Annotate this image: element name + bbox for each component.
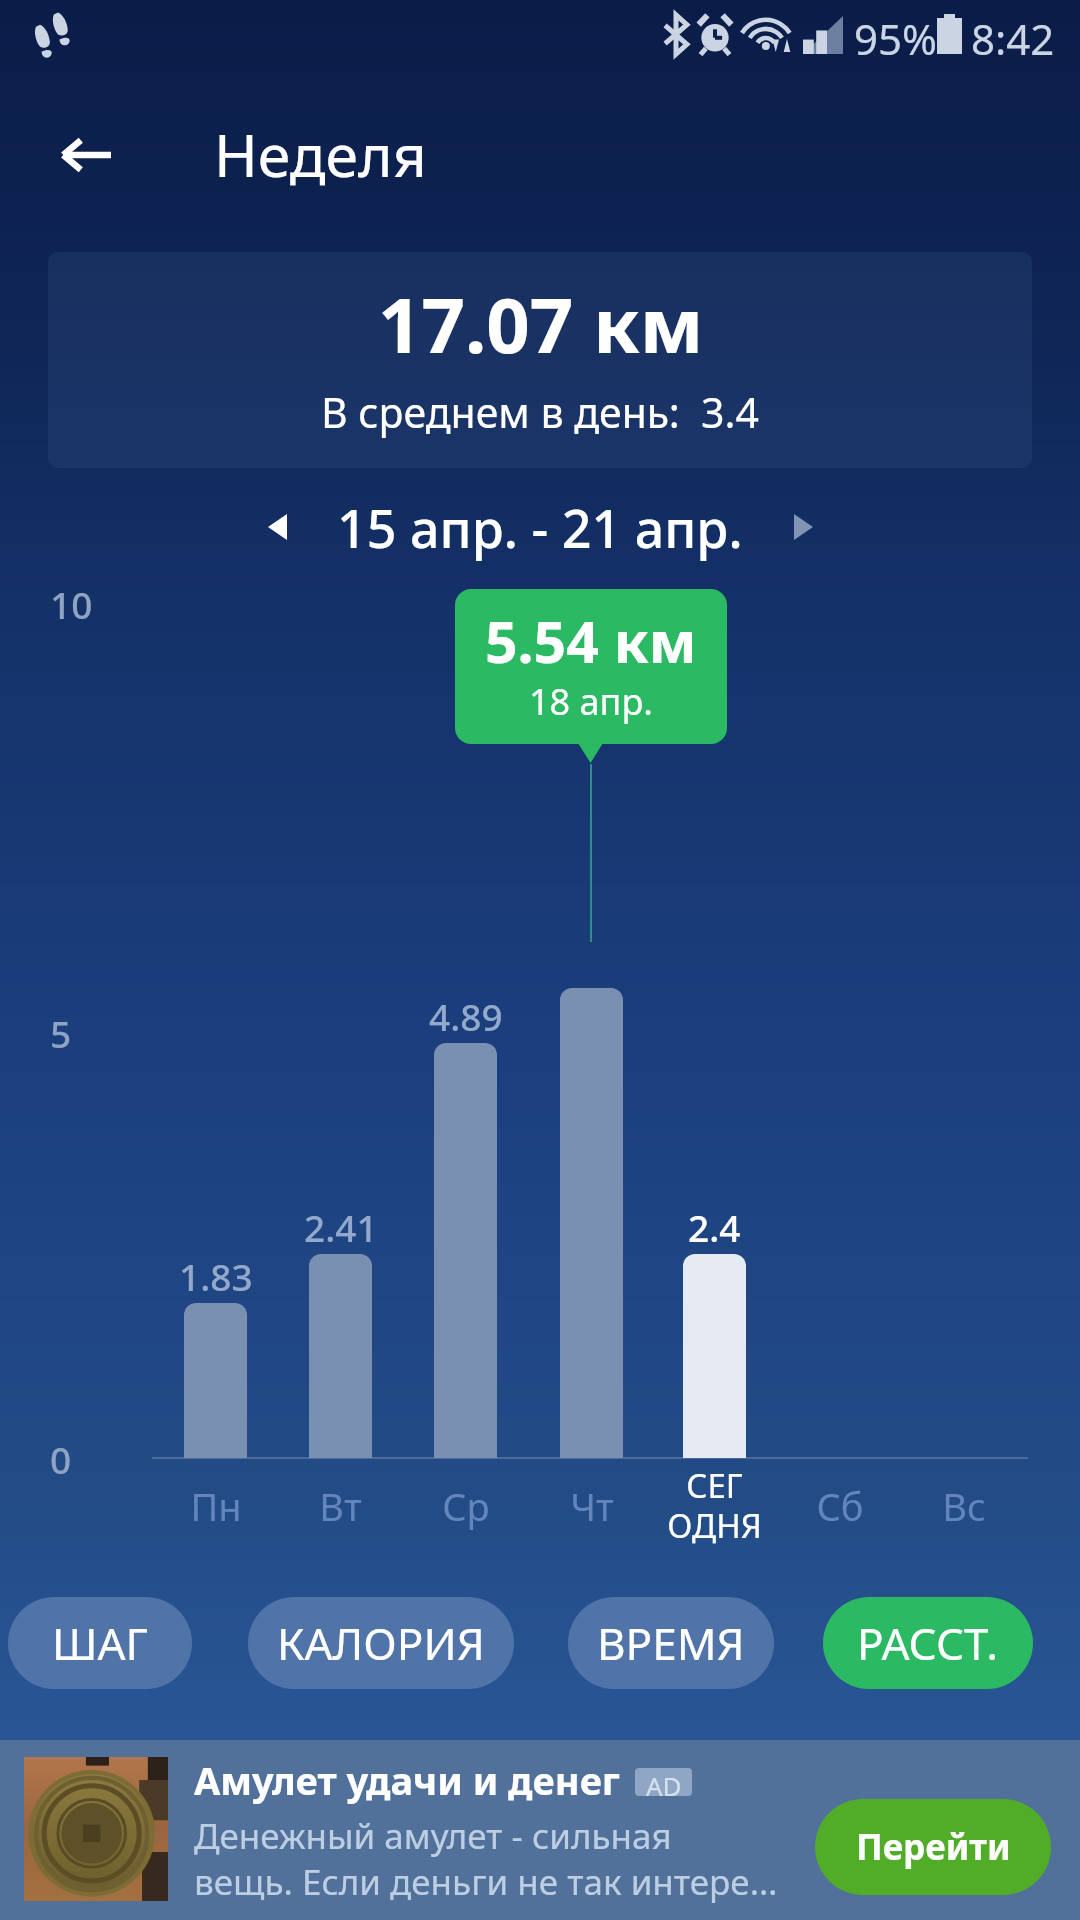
staticText: AD <box>646 1768 682 1796</box>
staticText: 4.89 <box>429 991 503 1041</box>
button[interactable]: Back <box>44 113 128 197</box>
staticText: ШАГ <box>52 1613 149 1673</box>
button[interactable]: ВРЕМЯ <box>568 1597 774 1689</box>
staticText: Ср <box>442 1480 490 1532</box>
staticText: 15 апр. - 21 апр. <box>337 492 743 563</box>
staticText: КАЛОРИЯ <box>277 1613 485 1673</box>
button[interactable]: Амулет удачи и денег <box>0 1740 1080 1920</box>
staticText: 8:42 <box>971 10 1055 67</box>
staticText: Вт <box>319 1480 362 1532</box>
staticText: 2.4 <box>688 1202 741 1252</box>
button[interactable] <box>434 1043 497 1458</box>
button[interactable]: Previous week <box>237 487 317 567</box>
staticText: Чт <box>570 1480 614 1532</box>
staticText: ВРЕМЯ <box>597 1613 745 1673</box>
button[interactable] <box>560 988 623 1458</box>
button[interactable]: Next week <box>763 487 843 567</box>
button[interactable]: КАЛОРИЯ <box>248 1597 514 1689</box>
staticText: Сб <box>816 1480 864 1532</box>
staticText: СЕГ ОДНЯ <box>667 1463 762 1548</box>
staticText: Денежный амулет - сильная вещь. Если ден… <box>194 1812 778 1905</box>
button[interactable] <box>683 1254 746 1458</box>
staticText: В среднем в день: 3.4 <box>321 384 760 440</box>
staticText: Амулет удачи и денег <box>194 1754 620 1806</box>
button[interactable]: 17.07 км <box>48 252 1032 468</box>
button[interactable]: Перейти <box>815 1799 1051 1895</box>
staticText: Пн <box>190 1480 242 1532</box>
button[interactable]: 5.54 км <box>455 589 727 744</box>
staticText: 10 <box>50 579 93 629</box>
button[interactable]: ШАГ <box>8 1597 192 1689</box>
staticText: Неделя <box>214 114 427 194</box>
staticText: РАССТ. <box>857 1613 999 1673</box>
staticText: 0 <box>50 1434 72 1484</box>
button[interactable] <box>309 1254 372 1458</box>
staticText: 2.41 <box>304 1202 378 1252</box>
staticText: Вс <box>942 1480 986 1532</box>
staticText: 95% <box>854 10 937 67</box>
staticText: Перейти <box>856 1823 1011 1871</box>
staticText: 5.54 км <box>485 602 697 680</box>
staticText: 18 апр. <box>529 677 653 726</box>
staticText: 17.07 км <box>378 272 704 376</box>
button[interactable]: РАССТ. <box>823 1597 1033 1689</box>
staticText: 5 <box>50 1008 72 1058</box>
button[interactable] <box>184 1303 247 1458</box>
staticText: 1.83 <box>179 1251 253 1301</box>
